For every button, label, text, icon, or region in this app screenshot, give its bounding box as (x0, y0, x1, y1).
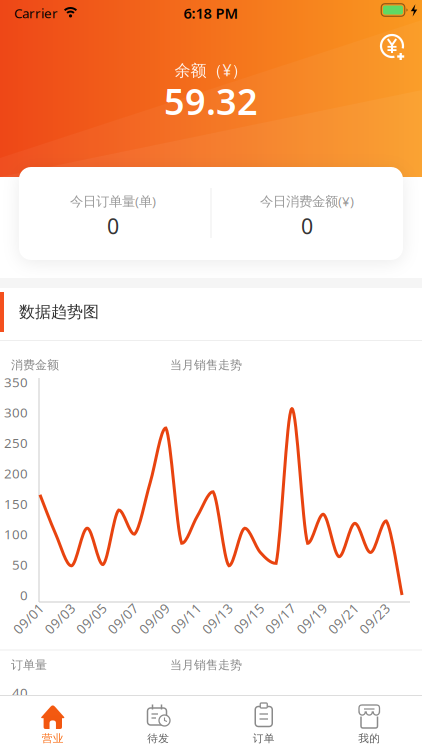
staticText: 今日订单量(单) (70, 192, 156, 210)
staticText: 09/05 (73, 610, 110, 627)
staticText: 数据趋势图 (19, 302, 99, 322)
staticText: 今日消费金额(¥) (260, 192, 354, 210)
staticText: 59.32 (164, 77, 258, 125)
staticText: 营业 (42, 732, 64, 745)
staticText: 余额（¥） (174, 59, 247, 81)
staticText: 09/11 (167, 610, 204, 627)
staticText: 当月销售走势 (170, 358, 242, 372)
staticText: 09/07 (104, 610, 141, 627)
staticText: 订单量 (11, 658, 47, 672)
staticText: 09/15 (230, 610, 267, 627)
staticText: 09/09 (136, 610, 173, 627)
button[interactable]: 待发 (0, 0, 422, 750)
button[interactable]: 订单 (0, 0, 422, 750)
staticText: 09/13 (199, 610, 236, 627)
staticText: 0 (301, 212, 313, 240)
staticText: 50 (12, 556, 28, 573)
staticText: 300 (4, 404, 28, 421)
staticText: 0 (107, 212, 119, 240)
staticText: 250 (4, 434, 28, 452)
staticText: 40 (12, 684, 28, 701)
staticText: 0 (20, 586, 28, 604)
button[interactable] (0, 0, 422, 750)
staticText: 100 (4, 525, 28, 543)
staticText: 待发 (147, 732, 169, 745)
staticText: 09/23 (356, 610, 393, 627)
staticText: 当月销售走势 (170, 658, 242, 672)
staticText: 消费金额 (11, 358, 59, 372)
button[interactable]: 我的 (0, 0, 422, 750)
staticText: 我的 (358, 732, 380, 745)
staticText: 09/03 (41, 610, 78, 627)
staticText: 150 (4, 495, 28, 513)
staticText: 200 (4, 464, 28, 482)
staticText: 09/21 (325, 610, 362, 627)
staticText: 09/17 (262, 610, 299, 627)
staticText: 09/19 (293, 610, 330, 627)
staticText: 6:18 PM (183, 3, 238, 23)
staticText: 订单 (253, 732, 275, 745)
button[interactable]: 营业 (0, 0, 422, 750)
staticText: 09/01 (10, 610, 47, 627)
staticText: 350 (4, 373, 28, 391)
staticText: Carrier (14, 4, 58, 22)
